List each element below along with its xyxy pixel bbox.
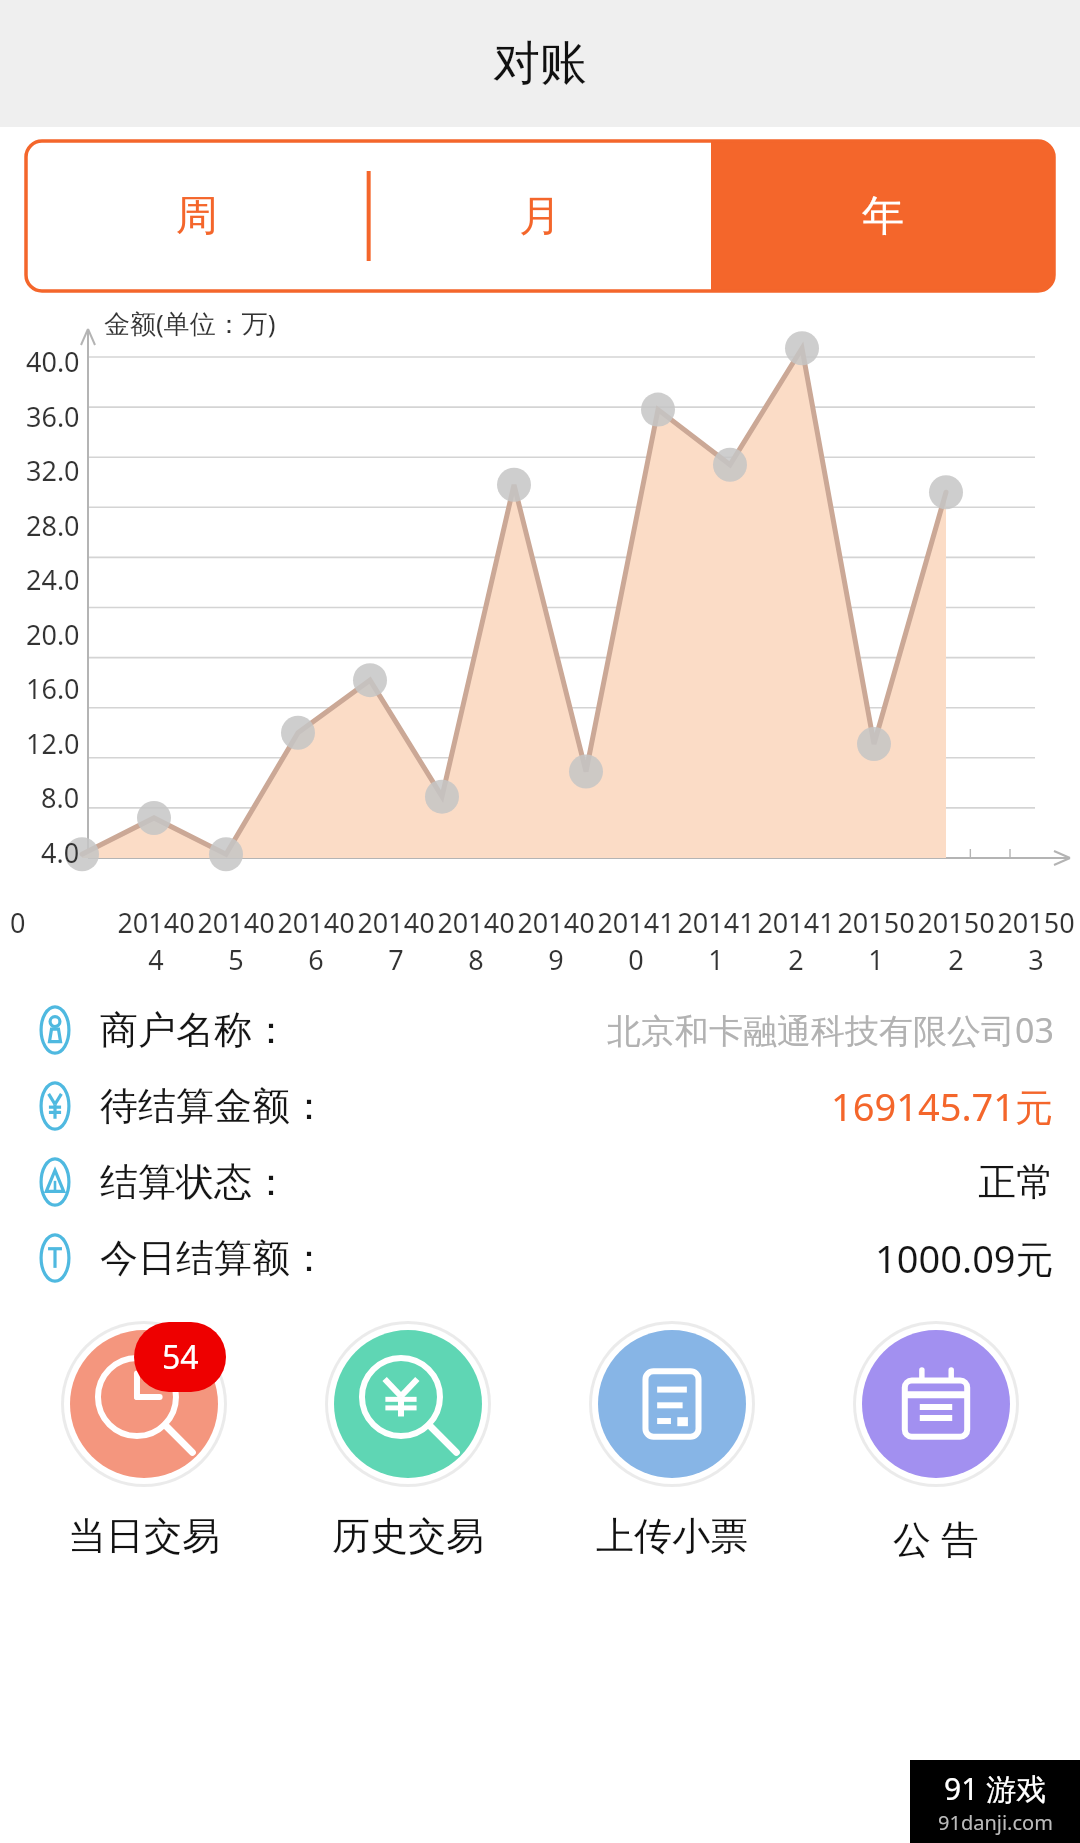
staticText: 当日交易 bbox=[68, 1512, 220, 1560]
staticText: 24.0 bbox=[26, 561, 80, 598]
staticText: 201408 bbox=[436, 904, 516, 978]
button[interactable]: 月 bbox=[368, 141, 711, 291]
staticText: 金额(单位：万) bbox=[104, 305, 276, 341]
staticText: 28.0 bbox=[26, 507, 80, 544]
staticText: 201410 bbox=[596, 904, 676, 978]
staticText: 20.0 bbox=[26, 616, 80, 653]
staticText: 月 bbox=[519, 190, 561, 243]
staticText: 201409 bbox=[516, 904, 596, 978]
staticText: 201502 bbox=[916, 904, 996, 978]
button[interactable]: 54 bbox=[12, 1320, 276, 1560]
button[interactable]: 周 bbox=[26, 141, 368, 291]
button[interactable]: 待结算金额： bbox=[26, 1068, 1054, 1144]
button[interactable]: 商户名称： bbox=[26, 992, 1054, 1068]
staticText: 16.0 bbox=[26, 670, 80, 707]
staticText: 北京和卡融通科技有限公司03 bbox=[607, 1007, 1054, 1053]
staticText: 正常 bbox=[978, 1158, 1054, 1206]
staticText: 36.0 bbox=[26, 398, 80, 435]
staticText: 今日结算额： bbox=[100, 1234, 328, 1282]
button[interactable]: 公 告 bbox=[804, 1320, 1068, 1564]
staticText: 201406 bbox=[276, 904, 356, 978]
staticText: 32.0 bbox=[26, 452, 80, 489]
staticText: 待结算金额： bbox=[100, 1082, 328, 1130]
staticText: 40.0 bbox=[26, 343, 80, 380]
button[interactable]: 今日结算额： bbox=[26, 1220, 1054, 1296]
staticText: 91danji.com bbox=[938, 1809, 1053, 1836]
staticText: 201411 bbox=[676, 904, 756, 978]
staticText: 12.0 bbox=[26, 725, 80, 762]
staticText: 91 游戏 bbox=[944, 1768, 1047, 1809]
staticText: 历史交易 bbox=[332, 1512, 484, 1560]
staticText: 201412 bbox=[756, 904, 836, 978]
staticText: 年 bbox=[862, 190, 904, 243]
staticText: 周 bbox=[176, 190, 218, 243]
staticText: 201407 bbox=[356, 904, 436, 978]
staticText: 8.0 bbox=[41, 779, 80, 816]
button[interactable]: 历史交易 bbox=[276, 1320, 540, 1560]
staticText: 对账 bbox=[493, 34, 587, 93]
button[interactable]: 年 bbox=[711, 141, 1054, 291]
staticText: 201503 bbox=[996, 904, 1076, 978]
staticText: 1000.09元 bbox=[875, 1232, 1054, 1284]
staticText: 上传小票 bbox=[596, 1512, 748, 1560]
staticText: 公 告 bbox=[893, 1512, 979, 1564]
staticText: 4.0 bbox=[41, 834, 80, 871]
staticText: 169145.71元 bbox=[831, 1080, 1054, 1132]
staticText: 54 bbox=[162, 1335, 199, 1379]
button[interactable]: 上传小票 bbox=[540, 1320, 804, 1560]
button[interactable]: 结算状态： bbox=[26, 1144, 1054, 1220]
staticText: 201405 bbox=[196, 904, 276, 978]
staticText: 商户名称： bbox=[100, 1006, 290, 1054]
staticText: 201404 bbox=[116, 904, 196, 978]
staticText: 结算状态： bbox=[100, 1158, 290, 1206]
staticText: 201501 bbox=[836, 904, 916, 978]
staticText: 0 bbox=[10, 904, 26, 941]
